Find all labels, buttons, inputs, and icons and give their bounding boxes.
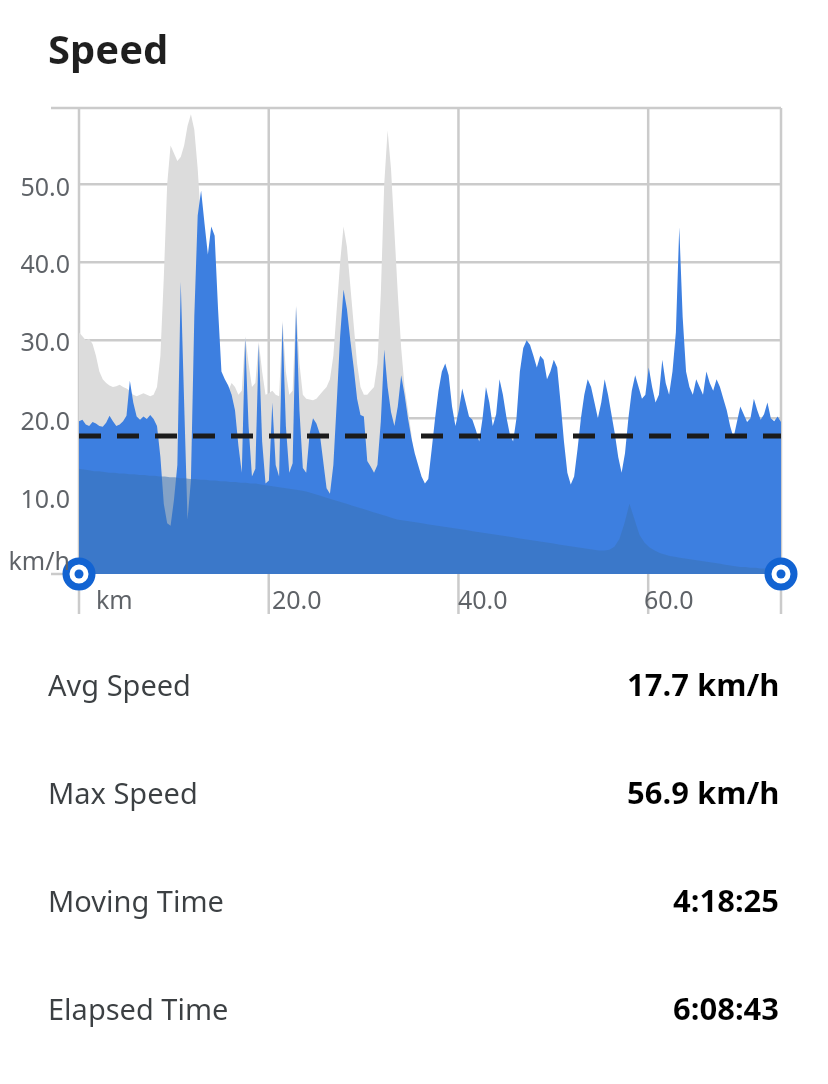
staticText: 17.7 km/h (627, 663, 780, 705)
staticText: 20.0 (20, 403, 70, 437)
staticText: km (96, 582, 133, 616)
other: Speed over distance chart (0, 95, 828, 630)
staticText: 40.0 (458, 582, 508, 616)
staticText: Moving Time (48, 881, 224, 920)
staticText: 60.0 (644, 582, 694, 616)
staticText: 40.0 (20, 246, 70, 280)
staticText: 6:08:43 (673, 987, 780, 1029)
button[interactable]: Elapsed Time (0, 954, 828, 1062)
staticText: Elapsed Time (48, 989, 229, 1028)
button[interactable]: Avg Speed (0, 630, 828, 738)
staticText: 20.0 (272, 582, 322, 616)
staticText: 30.0 (20, 324, 70, 358)
staticText: Avg Speed (48, 665, 191, 704)
staticText: Max Speed (48, 773, 198, 812)
staticText: 4:18:25 (673, 879, 780, 921)
staticText: km/h (8, 543, 70, 577)
staticText: 10.0 (20, 481, 70, 515)
button[interactable]: Max Speed (0, 738, 828, 846)
staticText: 50.0 (20, 169, 70, 203)
button[interactable]: Moving Time (0, 846, 828, 954)
staticText: 56.9 km/h (627, 771, 780, 813)
staticText: Speed (48, 21, 169, 75)
